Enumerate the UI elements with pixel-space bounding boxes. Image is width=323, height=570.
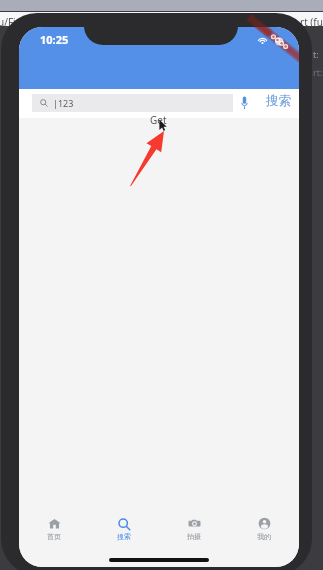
staticText: 拍摄 [187, 532, 201, 541]
staticText: 10:25 [40, 32, 69, 47]
button[interactable]: |123 [32, 94, 233, 112]
staticText: 搜索 [117, 532, 131, 541]
staticText: u/Fi [0, 15, 16, 29]
staticText: rt (fu [300, 15, 323, 29]
staticText: 首页 [47, 532, 61, 541]
button[interactable]: 搜索 [89, 503, 159, 567]
staticText: Get [150, 113, 167, 127]
button[interactable]: 我的 [229, 503, 299, 567]
staticText: t: [313, 48, 319, 60]
staticText: |123 [53, 97, 74, 109]
staticText: rt: [313, 66, 323, 78]
staticText: 搜索 [266, 93, 291, 109]
button[interactable]: 拍摄 [159, 503, 229, 567]
button[interactable]: 首页 [19, 503, 89, 567]
staticText: 我的 [257, 532, 271, 541]
button[interactable]: Voice search [233, 91, 256, 114]
button[interactable]: 搜索 [266, 93, 291, 109]
